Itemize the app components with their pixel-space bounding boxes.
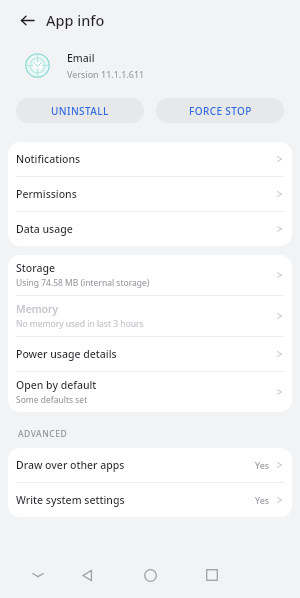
button[interactable]: Memory (8, 296, 292, 336)
staticText: App info (46, 10, 105, 30)
button[interactable]: Notifications (8, 142, 292, 176)
button[interactable]: Recent apps (194, 557, 230, 593)
staticText: ADVANCED (18, 428, 68, 440)
button[interactable]: Back (69, 557, 105, 593)
button[interactable]: Data usage (8, 212, 292, 246)
staticText: Some defaults set (16, 394, 88, 406)
button[interactable]: UNINSTALL (16, 98, 144, 123)
staticText: Permissions (16, 187, 77, 201)
staticText: Open by default (16, 378, 97, 392)
staticText: Draw over other apps (16, 458, 125, 472)
staticText: FORCE STOP (189, 104, 252, 118)
staticText: Storage (16, 261, 55, 275)
staticText: Memory (16, 302, 59, 316)
staticText: Version 11.1.1.611 (67, 68, 145, 80)
staticText: Email (67, 51, 95, 65)
staticText: Notifications (16, 152, 81, 166)
staticText: Yes (255, 494, 270, 506)
button[interactable]: Home (132, 557, 168, 593)
button[interactable]: Power usage details (8, 337, 292, 371)
staticText: Write system settings (16, 493, 125, 507)
staticText: Data usage (16, 222, 73, 236)
button[interactable]: Draw over other apps (8, 448, 292, 482)
staticText: Power usage details (16, 347, 117, 361)
button[interactable]: Back (14, 7, 40, 33)
button[interactable]: Open by default (8, 372, 292, 412)
staticText: UNINSTALL (51, 104, 109, 118)
button[interactable]: FORCE STOP (156, 98, 284, 123)
button[interactable]: Hide keyboard (20, 557, 56, 593)
button[interactable]: Storage (8, 255, 292, 295)
button[interactable]: Write system settings (8, 483, 292, 517)
staticText: Using 74.58 MB (internal storage) (16, 277, 150, 289)
staticText: No memory used in last 3 hours (16, 318, 144, 330)
staticText: Yes (255, 459, 270, 471)
button[interactable]: Permissions (8, 177, 292, 211)
